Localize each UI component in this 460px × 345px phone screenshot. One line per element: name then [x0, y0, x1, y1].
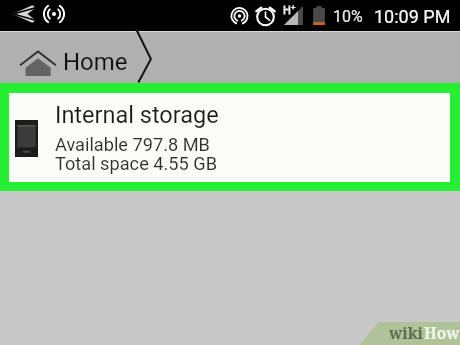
staticText: wiki	[389, 322, 424, 343]
other: Signal	[280, 4, 303, 25]
staticText: 10%	[333, 7, 363, 26]
button[interactable]: Home	[0, 31, 460, 83]
other: Navigation	[13, 5, 35, 23]
other: Hotspot	[230, 7, 249, 25]
staticText: 10:09 PM	[374, 6, 451, 27]
staticText: How	[424, 322, 460, 343]
staticText: H	[283, 4, 291, 17]
staticText: Total space 4.55 GB	[55, 153, 217, 174]
other: Alarm	[255, 5, 276, 25]
other: Battery	[312, 6, 326, 25]
other: NFC	[42, 4, 66, 24]
button[interactable]: Internal storage	[9, 93, 450, 182]
staticText: Internal storage	[55, 101, 219, 129]
staticText: +	[291, 3, 296, 12]
staticText: Available 797.8 MB	[55, 134, 210, 155]
staticText: Home	[63, 48, 128, 76]
